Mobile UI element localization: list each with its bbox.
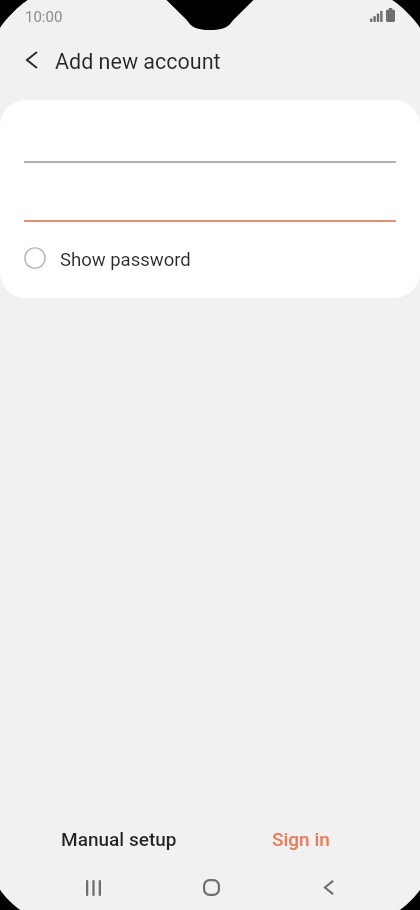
button[interactable]: Recents [69, 865, 118, 910]
button[interactable]: Home [187, 865, 236, 910]
button[interactable]: Email address [0, 118, 420, 162]
button[interactable]: Manual setup [28, 811, 210, 867]
button[interactable]: Navigate up [8, 36, 56, 84]
staticText: Add new account [55, 49, 221, 74]
button[interactable]: Back [304, 865, 353, 910]
button[interactable]: Sign in [210, 811, 392, 867]
staticText: 10:00 [25, 8, 63, 26]
staticText: Sign in [272, 828, 330, 850]
staticText: Manual setup [61, 828, 177, 850]
staticText: Show password [60, 249, 191, 271]
button[interactable]: Show password [0, 236, 420, 283]
